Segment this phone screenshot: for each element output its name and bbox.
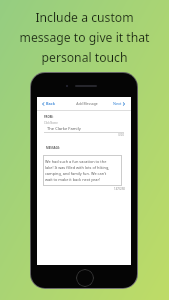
staticText: Next [113, 101, 122, 106]
staticText: We had such a fun vacation to the lake! … [45, 159, 110, 182]
staticText: The Clarke Family [47, 126, 81, 132]
button[interactable]: Next [113, 101, 125, 106]
staticText: 147/250 [44, 187, 125, 191]
staticText: Add Message [76, 101, 98, 106]
staticText: 0/20 [44, 133, 124, 137]
staticText: FROM: [44, 115, 54, 119]
staticText: MESSAGE: [46, 146, 60, 150]
button[interactable]: We had such a fun vacation to the lake! … [45, 159, 120, 186]
button[interactable]: Back [42, 101, 55, 106]
staticText: Back [46, 101, 55, 106]
staticText: Click Name [44, 121, 58, 125]
staticText: Include a custom message to give it that… [0, 9, 169, 65]
